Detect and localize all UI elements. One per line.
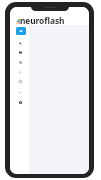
button[interactable]: Brand hub [17, 78, 24, 85]
button[interactable]: Workflows [17, 49, 24, 56]
button[interactable]: Documents [17, 69, 24, 76]
button[interactable]: Images [17, 59, 24, 66]
button[interactable]: Account [17, 99, 24, 106]
staticText: neuroflash [20, 15, 65, 26]
button[interactable]: Home [16, 27, 26, 35]
button[interactable]: Chat [17, 40, 24, 47]
button[interactable]: Templates [17, 89, 24, 96]
